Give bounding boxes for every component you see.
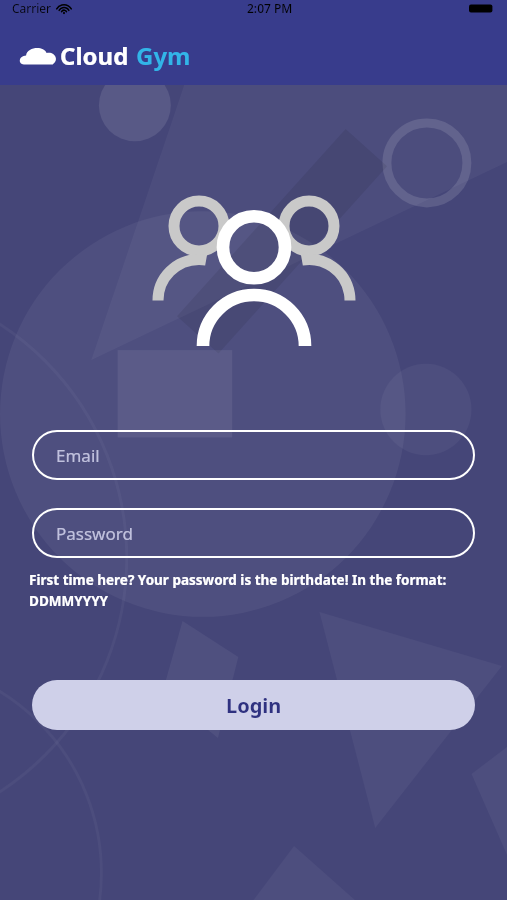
button[interactable]: Login <box>32 680 475 730</box>
staticText: Carrier <box>12 0 52 16</box>
button[interactable]: Email <box>32 430 475 480</box>
staticText: First time here? Your password is the bi… <box>29 571 478 610</box>
staticText: Login <box>226 692 282 719</box>
staticText: Email <box>56 444 100 467</box>
staticText: Password <box>56 522 133 545</box>
button[interactable]: Password <box>32 508 475 558</box>
staticText: Gym <box>136 39 191 72</box>
staticText: Cloud <box>60 39 129 72</box>
staticText: 2:07 PM <box>247 0 293 16</box>
